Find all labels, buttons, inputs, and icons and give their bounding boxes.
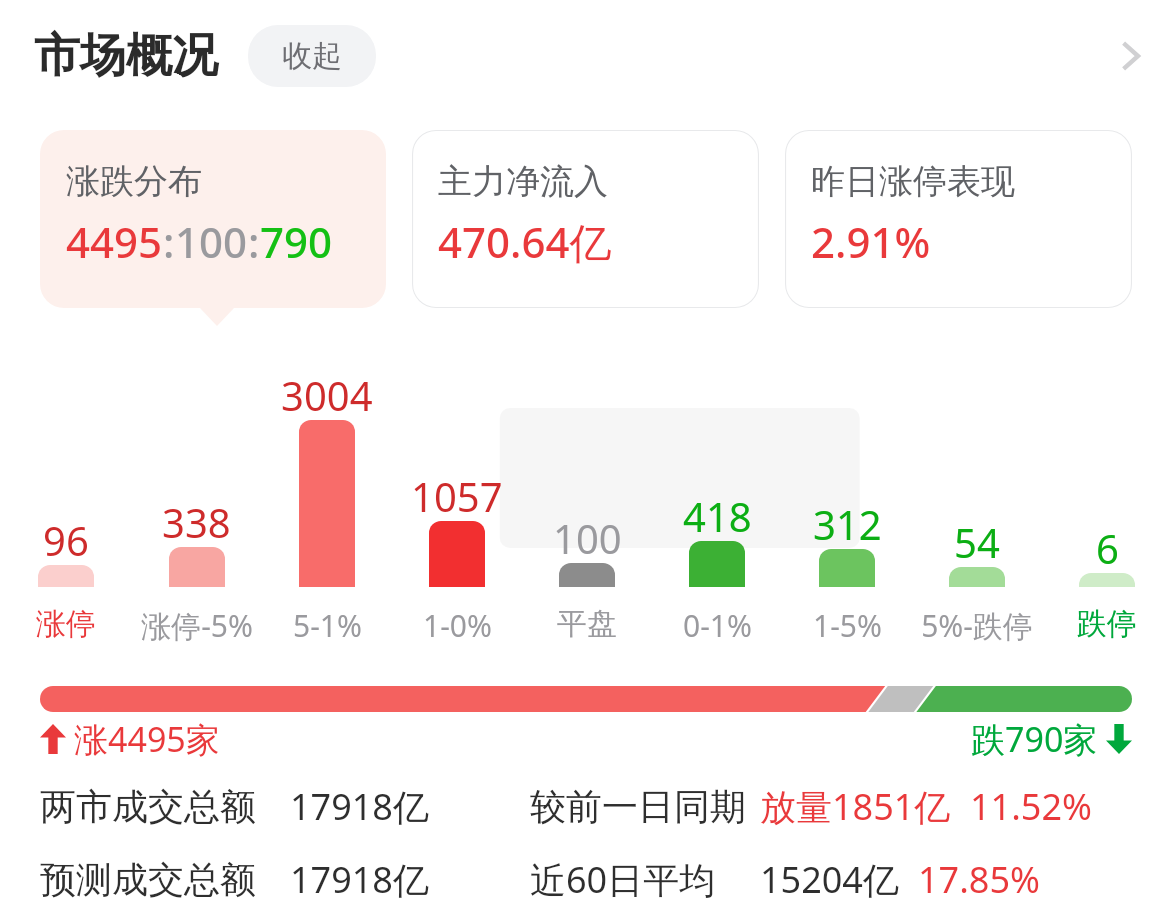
staticText: 790	[260, 213, 333, 270]
staticText: 338	[162, 495, 231, 549]
staticText: 11.52%	[970, 782, 1092, 831]
staticText: 主力净流入	[438, 160, 608, 203]
staticText: 跌790家	[971, 716, 1098, 762]
staticText: 0-1%	[683, 605, 752, 646]
staticText: 预测成交总额	[40, 857, 256, 902]
staticText: 1-0%	[423, 605, 492, 646]
staticText: 1057	[411, 469, 503, 523]
staticText: 涨停-5%	[141, 605, 253, 646]
staticText: 1-5%	[813, 605, 882, 646]
staticText: 100	[553, 511, 622, 565]
staticText: 3004	[281, 368, 373, 422]
staticText: 收起	[282, 37, 342, 75]
staticText: 放量1851亿	[760, 782, 951, 831]
staticText: 54	[954, 515, 1000, 569]
staticText: 100	[175, 213, 248, 270]
button[interactable]: 涨跌分布	[40, 130, 386, 308]
staticText: 4495	[66, 213, 163, 270]
button[interactable]: 主力净流入	[412, 130, 759, 308]
staticText: 涨跌分布	[66, 160, 202, 203]
staticText: 418	[683, 489, 752, 543]
staticText: 平盘	[557, 605, 617, 643]
staticText: 两市成交总额	[40, 784, 256, 829]
button[interactable]: 更多	[1088, 14, 1172, 98]
staticText: 15204亿	[760, 855, 899, 904]
staticText: 5-1%	[293, 605, 362, 646]
staticText: 470.64亿	[438, 213, 612, 270]
staticText: 6	[1096, 521, 1119, 575]
staticText: 17.85%	[918, 855, 1040, 904]
staticText: 312	[813, 497, 882, 551]
staticText: 96	[43, 513, 89, 567]
staticText: 5%-跌停	[921, 605, 1033, 646]
button[interactable]: 昨日涨停表现	[785, 130, 1132, 308]
staticText: 跌停	[1077, 605, 1137, 643]
staticText: 17918亿	[290, 855, 429, 904]
staticText: 昨日涨停表现	[811, 160, 1015, 203]
staticText: 17918亿	[290, 782, 429, 831]
staticText: 较前一日同期	[530, 784, 746, 829]
staticText: 市场概况	[34, 27, 218, 85]
staticText: :	[163, 213, 175, 270]
button[interactable]: 收起	[248, 25, 376, 87]
staticText: 2.91%	[811, 213, 931, 270]
staticText: 涨停	[36, 605, 96, 643]
staticText: :	[248, 213, 260, 270]
staticText: 近60日平均	[530, 855, 716, 904]
staticText: 涨4495家	[74, 716, 220, 762]
